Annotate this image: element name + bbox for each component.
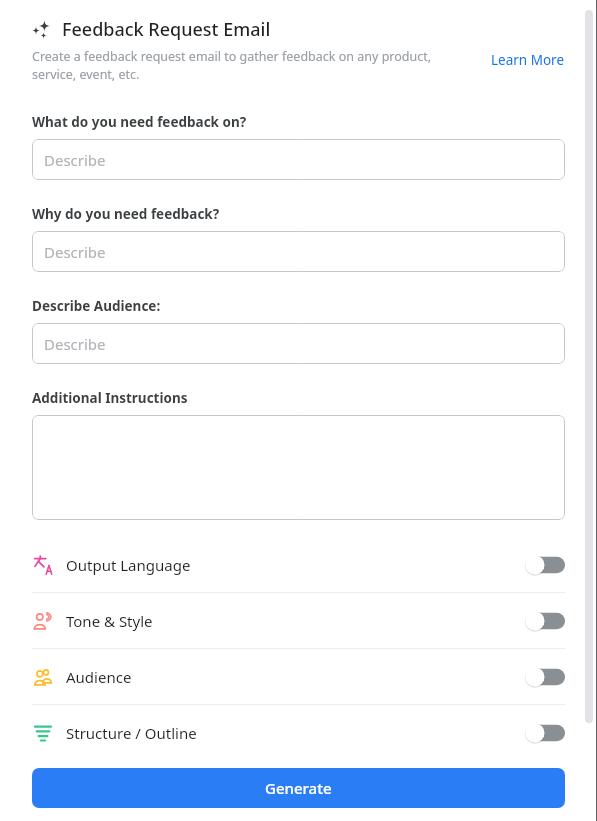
staticText: Describe bbox=[44, 242, 106, 262]
button[interactable]: Output Language bbox=[32, 537, 565, 592]
button[interactable]: Toggle bbox=[525, 723, 565, 743]
button[interactable]: Structure / Outline bbox=[32, 705, 565, 760]
button[interactable]: Tone & Style bbox=[32, 593, 565, 648]
staticText: Describe bbox=[44, 334, 106, 354]
staticText: Structure / Outline bbox=[66, 723, 197, 743]
staticText: Output Language bbox=[66, 555, 191, 575]
button[interactable]: Toggle bbox=[525, 555, 565, 575]
button[interactable]: Generate bbox=[32, 768, 565, 808]
button[interactable]: Describe bbox=[32, 231, 565, 272]
staticText: Create a feedback request email to gathe… bbox=[32, 48, 472, 83]
staticText: Additional Instructions bbox=[32, 389, 188, 407]
button[interactable]: Learn More bbox=[491, 51, 565, 69]
button[interactable] bbox=[32, 415, 565, 520]
button[interactable]: Describe bbox=[32, 139, 565, 180]
button[interactable]: Toggle bbox=[525, 667, 565, 687]
staticText: Describe Audience: bbox=[32, 297, 161, 315]
staticText: Describe bbox=[44, 150, 106, 170]
staticText: Feedback Request Email bbox=[62, 17, 271, 42]
button[interactable]: Audience bbox=[32, 649, 565, 704]
staticText: Why do you need feedback? bbox=[32, 205, 220, 223]
staticText: Learn More bbox=[491, 51, 565, 69]
button[interactable]: Toggle bbox=[525, 611, 565, 631]
button[interactable]: Describe bbox=[32, 323, 565, 364]
staticText: Generate bbox=[265, 778, 332, 798]
staticText: Audience bbox=[66, 667, 132, 687]
staticText: Tone & Style bbox=[66, 611, 153, 631]
staticText: What do you need feedback on? bbox=[32, 113, 247, 131]
